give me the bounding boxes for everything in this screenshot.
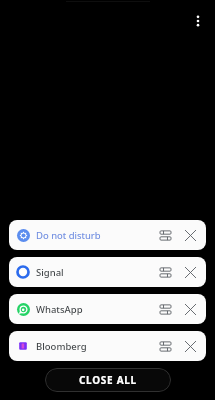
button[interactable]: More options [185, 8, 211, 34]
button[interactable]: Dismiss notification [178, 260, 202, 284]
staticText: Do not disturb [36, 229, 101, 242]
staticText: WhatsApp [36, 303, 83, 316]
button[interactable]: Notification settings [154, 261, 176, 283]
button[interactable]: Notification settings [154, 335, 176, 357]
button[interactable]: Signal [9, 257, 206, 287]
button[interactable]: Dismiss notification [178, 223, 202, 247]
button[interactable]: Notification settings [154, 224, 176, 246]
button[interactable]: CLOSE ALL [45, 368, 171, 392]
button[interactable]: Notification settings [154, 298, 176, 320]
button[interactable]: WhatsApp [9, 294, 206, 324]
staticText: Bloomberg [36, 340, 87, 353]
button[interactable]: Dismiss notification [178, 334, 202, 358]
staticText: Signal [36, 266, 64, 279]
staticText: CLOSE ALL [79, 373, 137, 387]
button[interactable]: Dismiss notification [178, 297, 202, 321]
button[interactable]: Bloomberg [9, 331, 206, 361]
button[interactable]: Do not disturb [9, 220, 206, 250]
